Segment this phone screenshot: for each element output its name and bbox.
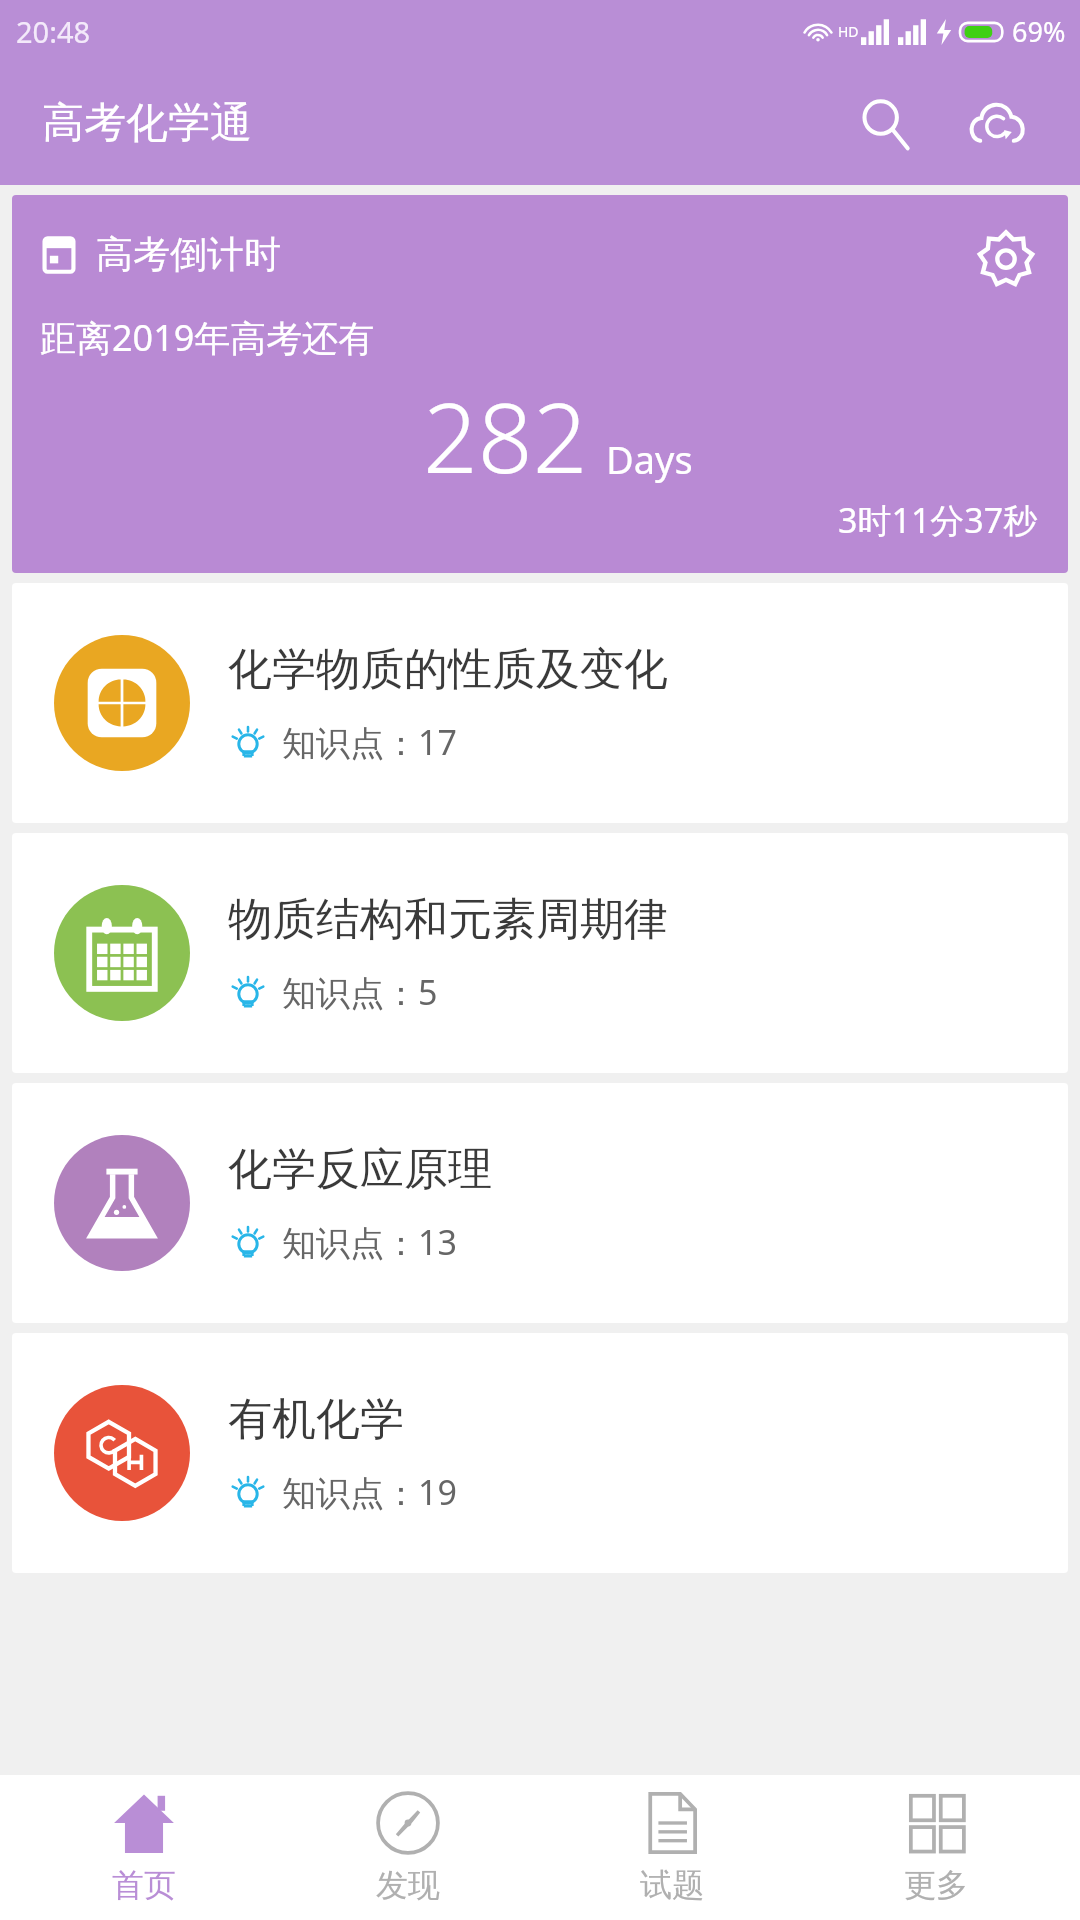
staticText: 试题	[640, 1865, 704, 1905]
staticText: 化学物质的性质及变化	[228, 642, 668, 697]
button[interactable]: Settings	[970, 223, 1042, 295]
button[interactable]: 高考倒计时	[12, 195, 1068, 573]
button[interactable]: 更多	[816, 1775, 1056, 1920]
staticText: HD	[838, 22, 859, 41]
staticText: 化学反应原理	[228, 1142, 492, 1197]
staticText: 知识点：5	[282, 969, 438, 1015]
button[interactable]: Sync	[954, 81, 1040, 167]
staticText: 3时11分37秒	[838, 497, 1038, 543]
button[interactable]: 化学反应原理	[12, 1083, 1068, 1323]
staticText: 知识点：13	[282, 1219, 457, 1265]
button[interactable]: Search	[842, 81, 928, 167]
staticText: 首页	[112, 1865, 176, 1905]
staticText: 高考倒计时	[96, 231, 281, 278]
button[interactable]: 首页	[24, 1775, 264, 1920]
staticText: 物质结构和元素周期律	[228, 892, 668, 947]
staticText: 69%	[1012, 13, 1066, 50]
staticText: 发现	[376, 1865, 440, 1905]
button[interactable]: 发现	[288, 1775, 528, 1920]
staticText: 知识点：19	[282, 1469, 457, 1515]
staticText: 距离2019年高考还有	[40, 313, 375, 362]
staticText: 更多	[904, 1865, 968, 1905]
staticText: 高考化学通	[42, 97, 252, 150]
staticText: 20:48	[16, 12, 91, 51]
button[interactable]: 化学物质的性质及变化	[12, 583, 1068, 823]
button[interactable]: 物质结构和元素周期律	[12, 833, 1068, 1073]
staticText: 知识点：17	[282, 719, 457, 765]
staticText: Days	[606, 433, 693, 485]
staticText: 282	[423, 370, 588, 501]
button[interactable]: 有机化学	[12, 1333, 1068, 1573]
staticText: 有机化学	[228, 1392, 404, 1447]
button[interactable]: 试题	[552, 1775, 792, 1920]
